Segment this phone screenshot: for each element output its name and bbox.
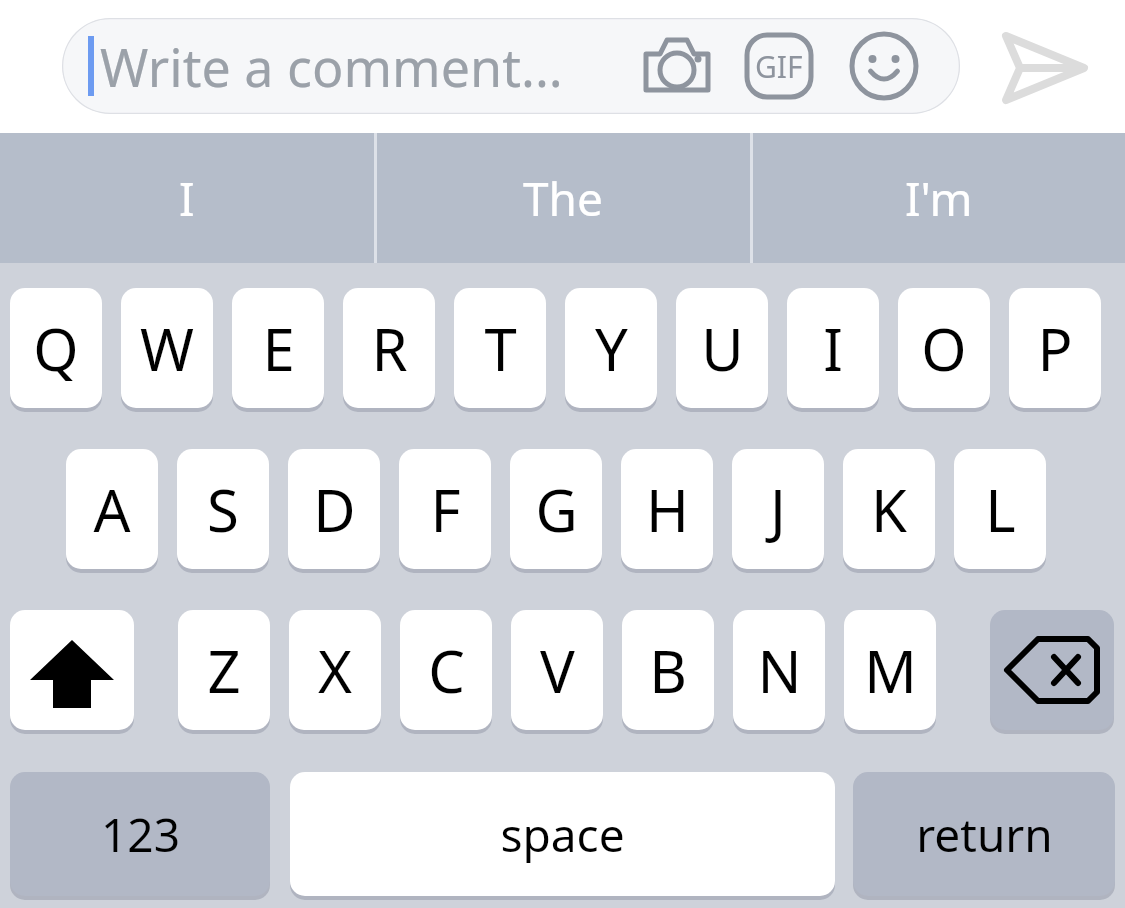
- staticText: The: [523, 167, 603, 230]
- staticText: J: [770, 470, 786, 549]
- staticText: L: [985, 470, 1016, 549]
- staticText: P: [1037, 309, 1073, 388]
- staticText: B: [649, 631, 687, 710]
- staticText: E: [262, 309, 295, 388]
- staticText: A: [93, 470, 131, 549]
- staticText: 123: [101, 803, 180, 866]
- staticText: Q: [33, 309, 79, 388]
- staticText: V: [540, 631, 575, 710]
- staticText: C: [428, 631, 465, 710]
- button[interactable]: Shift: [10, 610, 134, 730]
- staticText: M: [864, 631, 917, 710]
- staticText: Y: [595, 309, 628, 388]
- button[interactable]: H: [621, 449, 713, 569]
- button[interactable]: X: [289, 610, 381, 730]
- button[interactable]: Backspace: [990, 610, 1114, 730]
- staticText: Write a comment...: [100, 31, 563, 102]
- button[interactable]: The: [376, 133, 750, 263]
- button[interactable]: M: [844, 610, 936, 730]
- staticText: T: [484, 309, 517, 388]
- staticText: I: [179, 167, 195, 230]
- button[interactable]: space: [290, 772, 835, 896]
- button[interactable]: I: [787, 288, 879, 408]
- staticText: GIF: [755, 46, 803, 87]
- button[interactable]: G: [510, 449, 602, 569]
- button[interactable]: K: [843, 449, 935, 569]
- button[interactable]: U: [676, 288, 768, 408]
- staticText: O: [921, 309, 967, 388]
- staticText: D: [313, 470, 356, 549]
- staticText: I'm: [905, 167, 973, 230]
- button[interactable]: W: [121, 288, 213, 408]
- button[interactable]: I'm: [752, 133, 1125, 263]
- staticText: K: [871, 470, 907, 549]
- staticText: I: [823, 309, 843, 388]
- staticText: G: [535, 470, 578, 549]
- staticText: X: [318, 631, 352, 710]
- button[interactable]: I: [0, 133, 374, 263]
- button[interactable]: 123: [10, 772, 270, 896]
- staticText: space: [500, 803, 625, 866]
- button[interactable]: A: [66, 449, 158, 569]
- button[interactable]: GIF: [744, 32, 814, 100]
- staticText: U: [701, 309, 744, 388]
- button[interactable]: Send: [1000, 30, 1090, 106]
- button[interactable]: V: [511, 610, 603, 730]
- button[interactable]: Y: [565, 288, 657, 408]
- button[interactable]: Q: [10, 288, 102, 408]
- button[interactable]: Z: [178, 610, 270, 730]
- button[interactable]: N: [733, 610, 825, 730]
- button[interactable]: Emoji: [846, 30, 922, 102]
- staticText: N: [757, 631, 802, 710]
- button[interactable]: C: [400, 610, 492, 730]
- button[interactable]: F: [399, 449, 491, 569]
- button[interactable]: R: [343, 288, 435, 408]
- button[interactable]: E: [232, 288, 324, 408]
- staticText: R: [371, 309, 408, 388]
- staticText: Z: [207, 631, 241, 710]
- button[interactable]: [62, 18, 960, 114]
- staticText: W: [140, 309, 194, 388]
- button[interactable]: D: [288, 449, 380, 569]
- button[interactable]: T: [454, 288, 546, 408]
- button[interactable]: L: [954, 449, 1046, 569]
- button[interactable]: P: [1009, 288, 1101, 408]
- button[interactable]: O: [898, 288, 990, 408]
- button[interactable]: return: [853, 772, 1115, 896]
- button[interactable]: J: [732, 449, 824, 569]
- staticText: F: [430, 470, 461, 549]
- button[interactable]: S: [177, 449, 269, 569]
- staticText: H: [646, 470, 689, 549]
- staticText: return: [916, 803, 1053, 866]
- staticText: S: [207, 470, 239, 549]
- button[interactable]: B: [622, 610, 714, 730]
- button[interactable]: Camera: [640, 34, 714, 98]
